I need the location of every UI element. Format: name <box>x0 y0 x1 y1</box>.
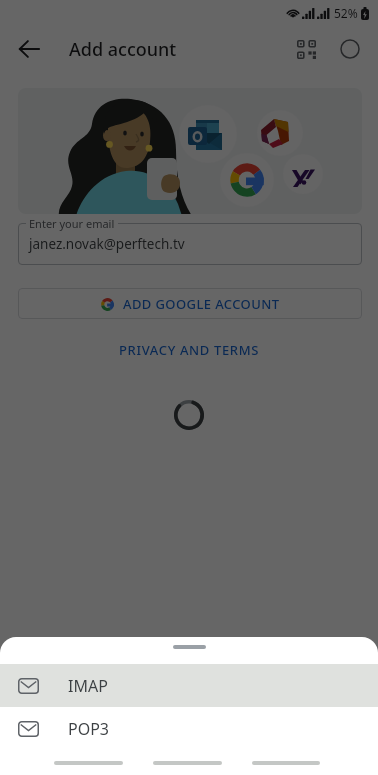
button[interactable]: IMAP <box>0 664 378 707</box>
staticText: POP3 <box>68 718 110 740</box>
staticText: Enter your email <box>29 216 115 231</box>
button[interactable]: Back <box>9 29 49 69</box>
button[interactable]: PRIVACY AND TERMS <box>111 336 268 364</box>
staticText: IMAP <box>68 675 108 697</box>
staticText: PRIVACY AND TERMS <box>119 341 260 359</box>
staticText: Add account <box>69 37 177 62</box>
button[interactable]: Scan QR code <box>286 29 326 69</box>
button[interactable]: POP3 <box>0 707 378 750</box>
button[interactable]: Recent apps <box>252 761 320 765</box>
button[interactable]: Help <box>330 29 370 69</box>
button[interactable]: ADD GOOGLE ACCOUNT <box>18 288 362 319</box>
staticText: janez.novak@perftech.tv <box>29 235 185 253</box>
staticText: ADD GOOGLE ACCOUNT <box>123 295 280 313</box>
staticText: 52% <box>334 5 358 21</box>
button[interactable]: Back <box>54 761 123 765</box>
button[interactable]: Home <box>153 761 222 765</box>
